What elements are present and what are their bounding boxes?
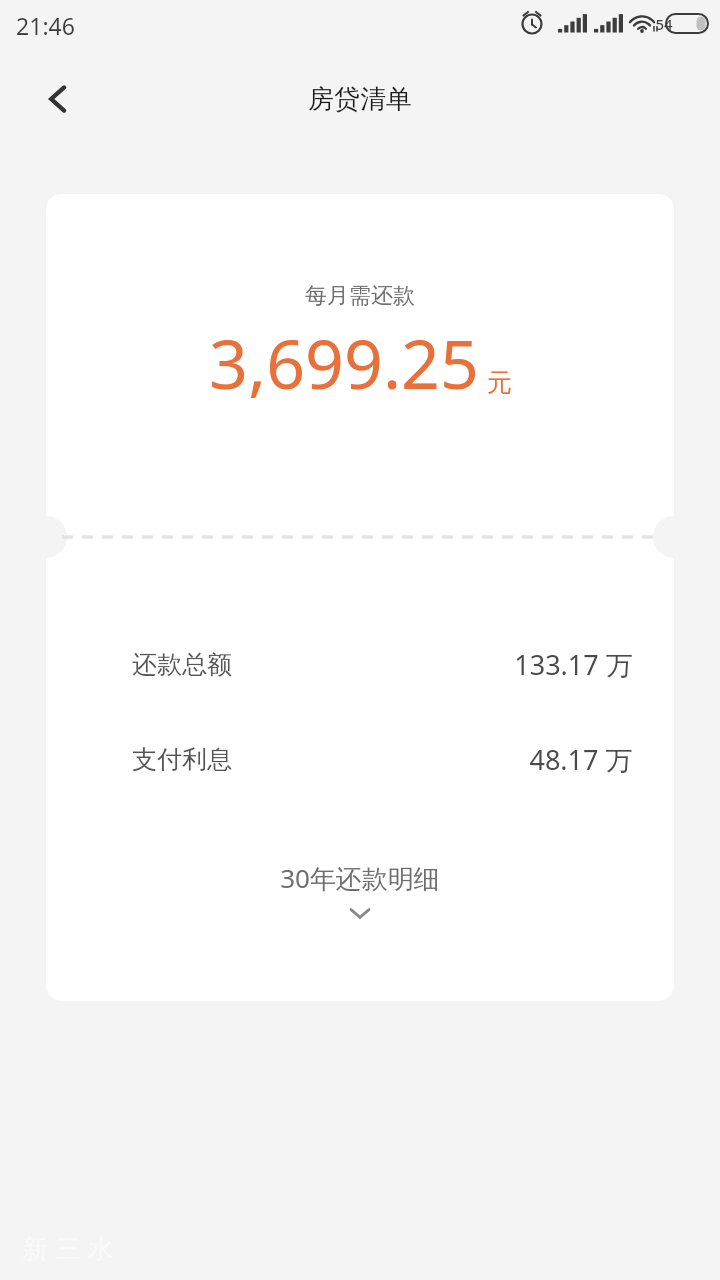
staticText: 21:46 [16,10,75,41]
button[interactable]: 30年还款明细 [46,860,674,921]
button[interactable]: 支付利息 [46,731,674,787]
staticText: 每月需还款 [305,282,415,310]
staticText: 48.17 万 [529,741,633,778]
staticText: 3,699.25 [209,316,479,409]
button[interactable]: 返回 [27,68,89,130]
staticText: 元 [487,367,512,398]
staticText: 54 [655,14,673,34]
staticText: 30年还款明细 [280,860,440,896]
staticText: 支付利息 [132,744,232,775]
staticText: 133.17 万 [514,646,633,683]
staticText: 房贷清单 [308,83,412,116]
staticText: 还款总额 [132,649,232,680]
button[interactable]: 还款总额 [46,636,674,692]
